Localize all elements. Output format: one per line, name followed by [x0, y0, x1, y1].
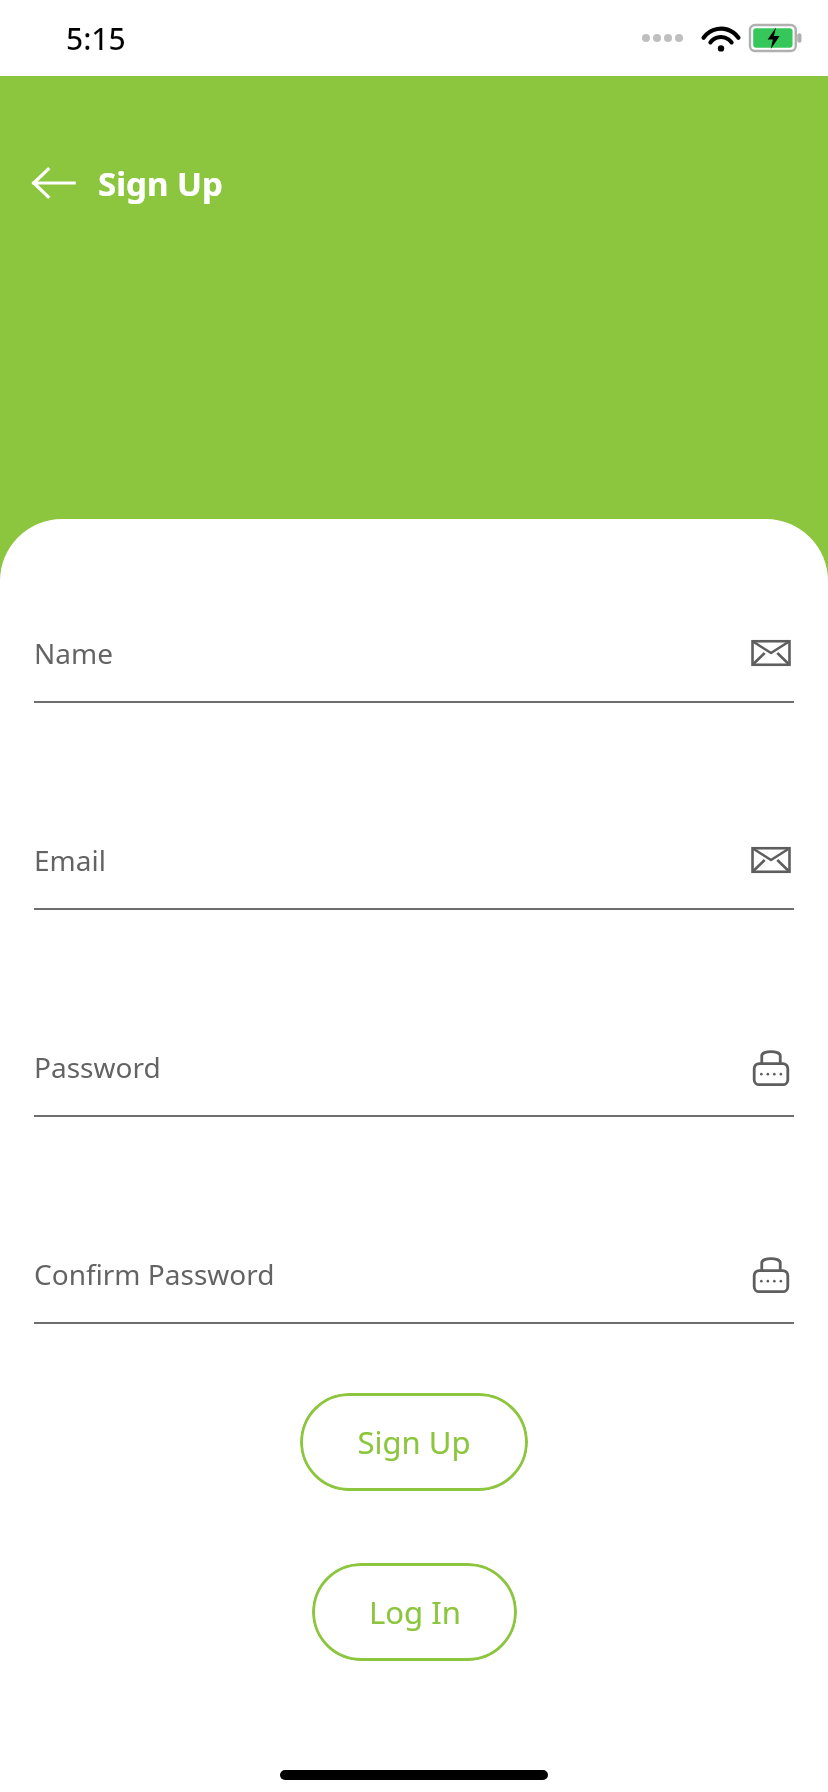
- button[interactable]: Back: [20, 149, 88, 217]
- staticText: Password: [34, 1048, 748, 1086]
- staticText: Name: [34, 634, 748, 672]
- staticText: Sign Up: [98, 161, 223, 206]
- staticText: 5:15: [66, 18, 126, 59]
- staticText: Sign Up: [357, 1421, 471, 1463]
- staticText: Log In: [369, 1591, 461, 1633]
- button[interactable]: Log In: [312, 1563, 517, 1661]
- button[interactable]: Name: [0, 628, 828, 703]
- button[interactable]: Confirm Password: [0, 1249, 828, 1324]
- staticText: Confirm Password: [34, 1255, 748, 1293]
- button[interactable]: Password: [0, 1042, 828, 1117]
- button[interactable]: Email: [0, 835, 828, 910]
- staticText: Email: [34, 841, 748, 879]
- button[interactable]: Sign Up: [300, 1393, 528, 1491]
